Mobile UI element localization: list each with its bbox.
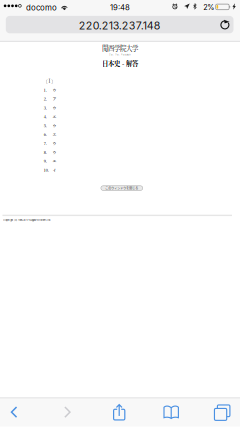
staticText: 5. <box>44 123 47 128</box>
staticText: 10. <box>44 167 49 173</box>
staticText: 220.213.237.148 <box>79 19 161 32</box>
staticText: ２日、３日、４日実施分 <box>109 53 131 56</box>
button[interactable]: Reload <box>218 17 232 31</box>
staticText: ウ <box>53 149 57 155</box>
staticText: 2. <box>44 96 47 102</box>
staticText: 4. <box>44 114 47 119</box>
button[interactable]: Forward <box>56 398 78 427</box>
staticText: 9. <box>44 158 47 164</box>
staticText: このウィンドウを閉じる <box>105 186 138 190</box>
staticText: ア <box>53 96 57 102</box>
staticText: 3. <box>44 105 47 111</box>
staticText: 8. <box>44 149 47 155</box>
staticText: 〔Ⅰ〕 <box>43 78 55 84</box>
button[interactable]: Back <box>3 398 25 427</box>
staticText: 1. <box>44 87 47 93</box>
staticText: ウ <box>53 140 57 146</box>
button[interactable]: Bookmarks <box>158 398 184 427</box>
staticText: 2% <box>203 3 214 12</box>
button[interactable]: このウィンドウを閉じる <box>101 186 143 190</box>
staticText: 19:48 <box>110 3 130 12</box>
staticText: 関西学院大学 <box>102 43 138 53</box>
staticText: エ <box>53 114 57 119</box>
staticText: ウ <box>53 105 57 111</box>
button[interactable]: 220.213.237.148 <box>6 16 233 33</box>
staticText: ウ <box>53 87 57 93</box>
staticText: 6. <box>44 132 47 137</box>
staticText: エ <box>53 132 57 137</box>
button[interactable]: Share <box>106 398 132 427</box>
staticText: 7. <box>44 140 47 146</box>
staticText: ウ <box>53 123 57 128</box>
button[interactable]: Tabs <box>209 398 235 427</box>
staticText: イ <box>53 167 57 173</box>
staticText: Copyright (c) 1995-2017 Nagase Brothers … <box>3 219 51 222</box>
staticText: 日本史 - 解答 <box>102 59 138 68</box>
staticText: エ <box>53 158 57 164</box>
staticText: docomo <box>26 3 57 12</box>
